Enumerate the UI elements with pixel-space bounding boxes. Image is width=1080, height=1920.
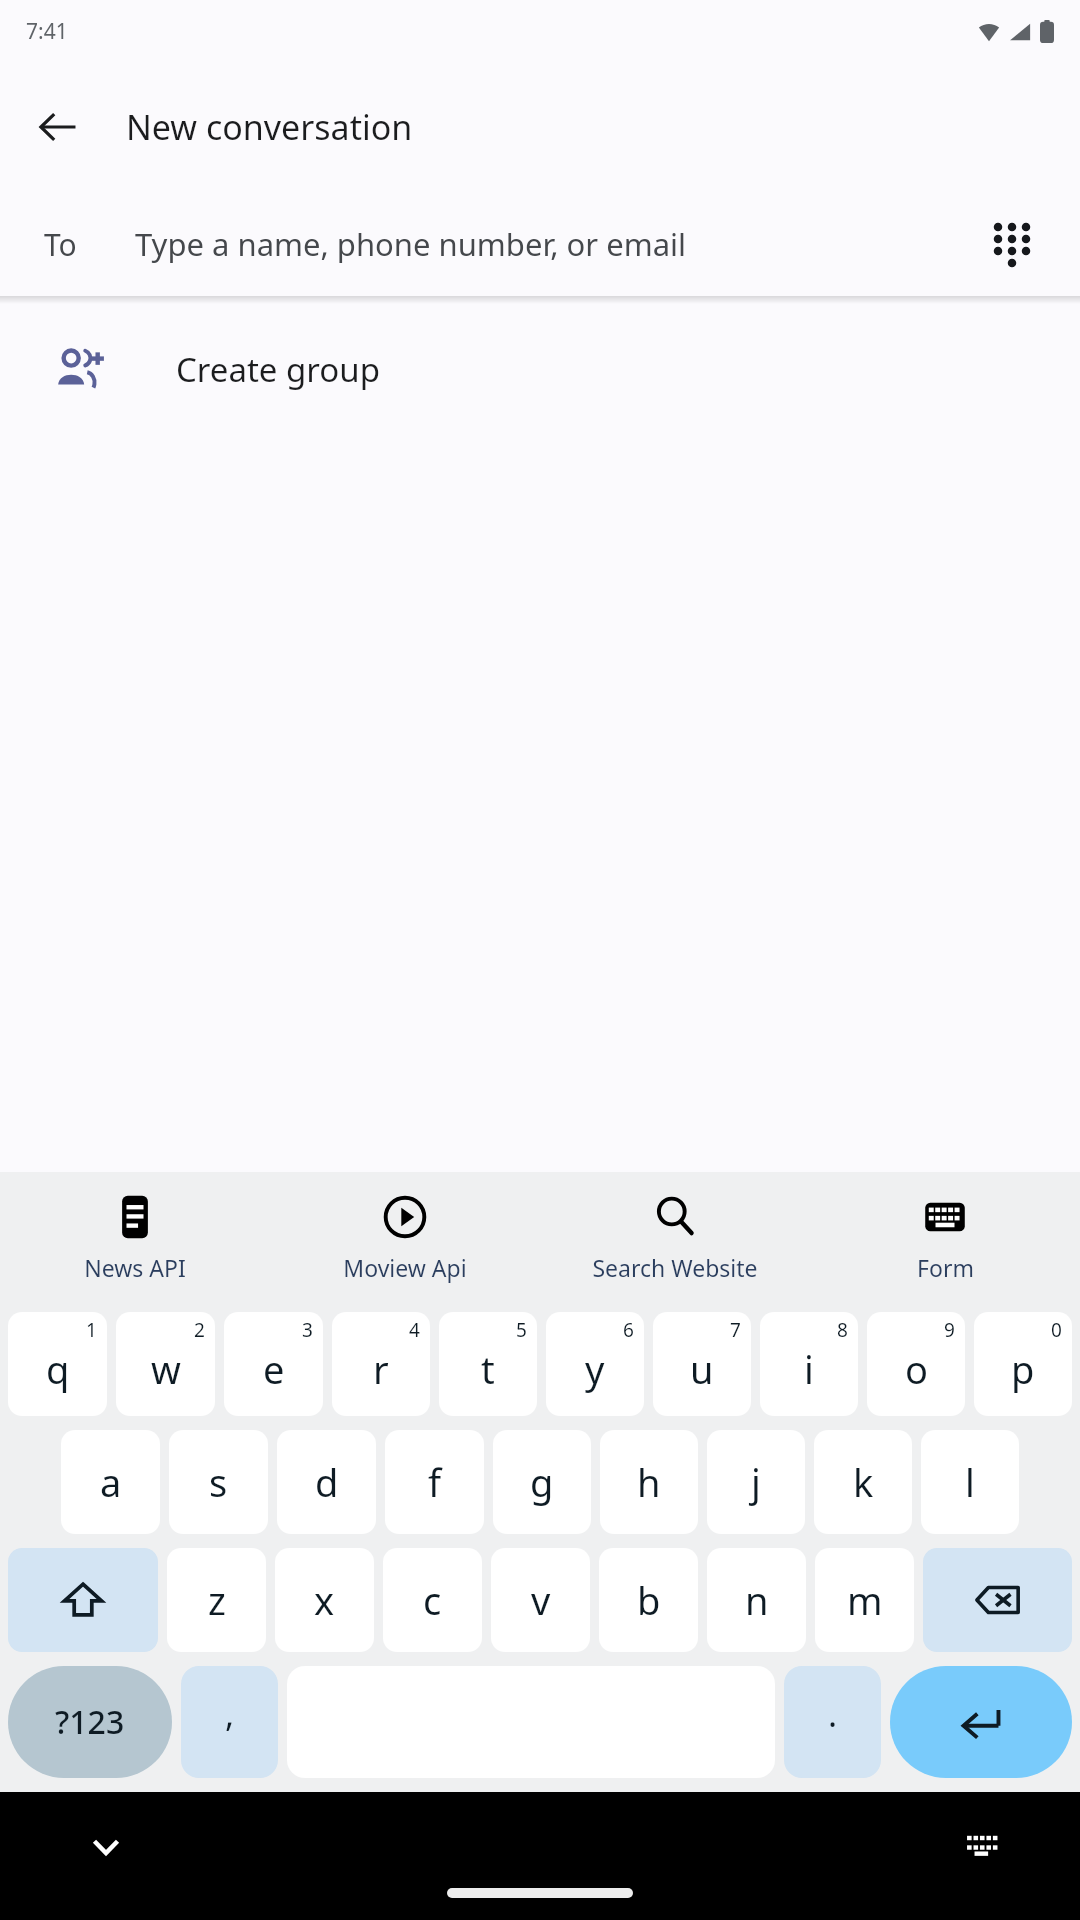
button[interactable]: d [277, 1430, 376, 1534]
staticText: t [481, 1343, 495, 1395]
button[interactable]: 1 [8, 1312, 107, 1416]
staticText: y [585, 1343, 605, 1395]
button[interactable]: Hide keyboard [78, 1818, 134, 1874]
button[interactable]: News API [0, 1172, 270, 1304]
button[interactable]: , [181, 1666, 278, 1778]
button[interactable]: x [275, 1548, 374, 1652]
button[interactable]: Enter [890, 1666, 1072, 1778]
button[interactable]: n [707, 1548, 806, 1652]
staticText: 7:41 [26, 17, 68, 46]
staticText: Type a name, phone number, or email [135, 223, 687, 265]
staticText: 7 [730, 1317, 741, 1343]
staticText: r [373, 1343, 389, 1395]
button[interactable]: l [921, 1430, 1019, 1534]
button[interactable]: Switch keyboard [954, 1818, 1010, 1874]
staticText: i [804, 1343, 814, 1395]
staticText: To [44, 224, 77, 265]
staticText: New conversation [126, 104, 413, 150]
button[interactable]: Back [22, 91, 94, 163]
staticText: Form [917, 1252, 974, 1283]
button[interactable]: c [383, 1548, 482, 1652]
button[interactable]: Dialpad [972, 204, 1052, 284]
staticText: 6 [623, 1317, 634, 1343]
button[interactable]: b [599, 1548, 698, 1652]
button[interactable]: 5 [439, 1312, 537, 1416]
staticText: 5 [516, 1317, 527, 1343]
button[interactable]: Form [810, 1172, 1080, 1304]
button[interactable]: . [784, 1666, 881, 1778]
staticText: v [531, 1574, 551, 1626]
staticText: x [314, 1574, 335, 1626]
staticText: 1 [86, 1317, 97, 1343]
staticText: n [745, 1574, 769, 1626]
staticText: b [637, 1574, 661, 1626]
staticText: q [46, 1343, 70, 1395]
button[interactable]: f [385, 1430, 484, 1534]
staticText: m [847, 1574, 883, 1626]
staticText: . [828, 1691, 838, 1737]
staticText: u [690, 1343, 714, 1395]
button[interactable]: s [169, 1430, 268, 1534]
staticText: f [428, 1456, 442, 1508]
button[interactable]: 6 [546, 1312, 644, 1416]
staticText: ?123 [55, 1700, 125, 1744]
staticText: k [853, 1456, 874, 1508]
staticText: a [100, 1456, 122, 1508]
staticText: h [637, 1456, 661, 1508]
staticText: News API [84, 1252, 186, 1283]
button[interactable]: h [600, 1430, 698, 1534]
staticText: p [1011, 1343, 1035, 1395]
staticText: 4 [409, 1317, 420, 1343]
button[interactable]: v [491, 1548, 590, 1652]
button[interactable]: Shift [8, 1548, 158, 1652]
staticText: Search Website [592, 1252, 758, 1283]
staticText: Create group [176, 347, 380, 392]
button[interactable]: 9 [867, 1312, 965, 1416]
button[interactable]: Search Website [540, 1172, 810, 1304]
button[interactable]: Moview Api [270, 1172, 540, 1304]
staticText: l [965, 1456, 975, 1508]
button[interactable]: Backspace [923, 1548, 1072, 1652]
staticText: 2 [194, 1317, 205, 1343]
staticText: 9 [944, 1317, 955, 1343]
staticText: g [530, 1456, 554, 1508]
staticText: d [315, 1456, 339, 1508]
button[interactable]: a [61, 1430, 160, 1534]
staticText: e [263, 1343, 285, 1395]
staticText: z [208, 1574, 226, 1626]
button[interactable]: To [0, 192, 1080, 296]
staticText: Moview Api [343, 1252, 467, 1283]
button[interactable]: k [814, 1430, 912, 1534]
button[interactable]: z [167, 1548, 266, 1652]
button[interactable]: m [815, 1548, 914, 1652]
button[interactable]: 2 [116, 1312, 215, 1416]
staticText: 0 [1051, 1317, 1062, 1343]
button[interactable]: g [493, 1430, 591, 1534]
staticText: 8 [837, 1317, 848, 1343]
button[interactable]: 8 [760, 1312, 858, 1416]
button[interactable]: Create group [0, 304, 1080, 434]
button[interactable]: 0 [974, 1312, 1072, 1416]
staticText: w [151, 1343, 181, 1395]
button[interactable]: ?123 [8, 1666, 172, 1778]
staticText: 3 [302, 1317, 313, 1343]
staticText: o [905, 1343, 928, 1395]
staticText: s [209, 1456, 228, 1508]
staticText: j [751, 1456, 761, 1508]
button[interactable]: 3 [224, 1312, 323, 1416]
staticText: c [423, 1574, 442, 1626]
staticText: , [225, 1691, 235, 1737]
button[interactable]: 7 [653, 1312, 751, 1416]
button[interactable]: 4 [332, 1312, 430, 1416]
button[interactable]: j [707, 1430, 805, 1534]
